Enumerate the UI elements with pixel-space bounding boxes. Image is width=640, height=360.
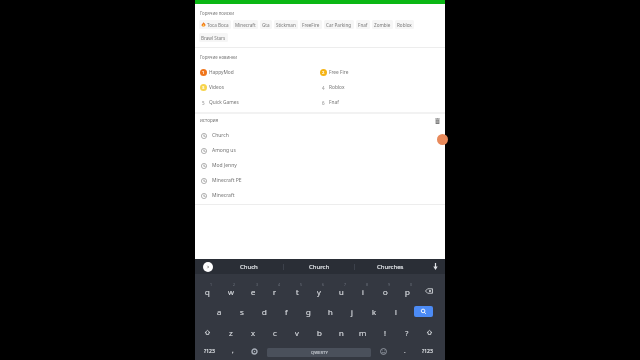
button[interactable]: Church [284, 259, 354, 274]
button[interactable]: d [253, 301, 275, 322]
button[interactable]: Mod Jenny [195, 158, 445, 173]
button[interactable]: Minecraft [195, 188, 445, 203]
button[interactable]: Fnaf [356, 20, 370, 29]
button[interactable]: Shift [196, 322, 219, 342]
button[interactable]: k [363, 301, 385, 322]
button[interactable]: FreeFire [300, 20, 322, 29]
button[interactable]: Roblox [395, 20, 414, 29]
staticText: Quick Games [209, 99, 239, 106]
button[interactable]: h [319, 301, 341, 322]
staticText: u [339, 286, 344, 297]
staticText: 6 [322, 100, 325, 106]
button[interactable]: Toca Boca [199, 20, 231, 29]
staticText: 2 [322, 70, 325, 76]
staticText: Zombie [374, 22, 391, 28]
staticText: Chuch [240, 263, 258, 271]
button[interactable]: 3 [242, 281, 264, 301]
button[interactable]: ?123 [415, 342, 440, 360]
staticText: ?123 [204, 348, 215, 355]
button[interactable]: z [219, 322, 242, 342]
button[interactable]: Backspace [418, 281, 440, 301]
button[interactable]: 3 [195, 83, 320, 92]
button[interactable]: Gta [260, 20, 272, 29]
button[interactable]: f [275, 301, 297, 322]
button[interactable]: Brawl Stars [199, 33, 228, 42]
staticText: f [285, 306, 288, 317]
staticText: QWERTY [311, 350, 328, 356]
button[interactable]: Among us [195, 143, 445, 158]
staticText: w [228, 286, 234, 297]
button[interactable]: 8 [352, 281, 374, 301]
button[interactable]: a [208, 301, 231, 322]
button[interactable]: Chuch [214, 259, 283, 274]
button[interactable]: Zombie [372, 20, 393, 29]
button[interactable]: Shift [418, 322, 440, 342]
staticText: 9 [388, 282, 391, 287]
button[interactable]: m [352, 322, 374, 342]
button[interactable]: x [242, 322, 264, 342]
button[interactable]: 4 [320, 83, 445, 92]
staticText: Горячие поиски [200, 10, 234, 16]
button[interactable]: l [385, 301, 407, 322]
button[interactable]: Keyboard settings [244, 342, 265, 360]
button[interactable]: n [330, 322, 352, 342]
button[interactable]: s [231, 301, 253, 322]
button[interactable]: Search [414, 306, 433, 317]
staticText: Toca Boca [207, 22, 229, 28]
button[interactable]: 6 [308, 281, 330, 301]
button[interactable]: 0 [396, 281, 418, 301]
button[interactable]: Space [267, 348, 371, 357]
staticText: 2 [233, 282, 236, 287]
button[interactable]: More suggestions [203, 262, 213, 272]
staticText: 0 [410, 282, 413, 287]
button[interactable]: v [286, 322, 308, 342]
button[interactable]: Car Parking [324, 20, 354, 29]
staticText: Mod Jenny [212, 162, 237, 169]
button[interactable]: 7 [330, 281, 352, 301]
button[interactable]: c [264, 322, 286, 342]
staticText: история [200, 117, 219, 123]
button[interactable]: b [308, 322, 330, 342]
staticText: o [383, 286, 388, 297]
button[interactable]: Minecraft PE [195, 173, 445, 188]
button[interactable]: j [341, 301, 363, 322]
staticText: Videos [209, 84, 224, 91]
button[interactable]: Churches [355, 259, 425, 274]
staticText: Minecraft [235, 22, 256, 28]
button[interactable]: g [297, 301, 319, 322]
button[interactable]: Minecraft [233, 20, 258, 29]
button[interactable]: 1 [195, 68, 320, 77]
button[interactable]: Stickman [274, 20, 298, 29]
button[interactable]: 5 [286, 281, 308, 301]
staticText: p [405, 286, 410, 297]
button[interactable]: 2 [219, 281, 242, 301]
staticText: x [251, 327, 256, 338]
staticText: ! [384, 327, 386, 338]
button[interactable]: ! [374, 322, 396, 342]
staticText: b [317, 327, 322, 338]
staticText: . [404, 347, 406, 355]
button[interactable]: Church [195, 128, 445, 143]
staticText: c [273, 327, 277, 338]
button[interactable]: , [222, 342, 244, 360]
button[interactable]: Feedback [437, 134, 448, 145]
button[interactable]: ? [396, 322, 418, 342]
button[interactable]: 1 [196, 281, 219, 301]
button[interactable]: ?123 [196, 342, 222, 360]
staticText: k [372, 306, 376, 317]
button[interactable]: 6 [320, 98, 445, 107]
staticText: Горячие новинки [200, 54, 237, 60]
staticText: Fnaf [329, 99, 339, 106]
button[interactable]: . [394, 342, 415, 360]
staticText: t [296, 286, 299, 297]
button[interactable]: Clear history [433, 116, 442, 125]
button[interactable]: 2 [320, 68, 445, 77]
button[interactable]: 9 [374, 281, 396, 301]
staticText: Among us [212, 147, 236, 154]
button[interactable]: Hide keyboard [425, 259, 445, 274]
button[interactable]: 4 [264, 281, 286, 301]
staticText: FreeFire [302, 22, 320, 28]
staticText: 1 [202, 70, 205, 76]
button[interactable]: 5 [195, 98, 320, 107]
button[interactable]: Emoji [373, 342, 394, 360]
